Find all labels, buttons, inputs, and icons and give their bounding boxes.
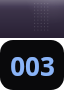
button[interactable]: 003 <box>0 40 64 90</box>
staticText: 003 <box>10 48 55 83</box>
